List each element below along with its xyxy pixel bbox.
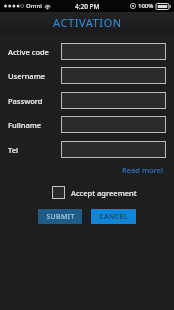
staticText: Password xyxy=(8,96,43,106)
button[interactable] xyxy=(61,43,166,60)
button[interactable] xyxy=(61,92,166,109)
staticText: 100% xyxy=(138,2,154,10)
staticText: Read more! xyxy=(122,165,163,175)
staticText: Fullname xyxy=(8,120,42,130)
staticText: Tel xyxy=(8,145,19,155)
button[interactable] xyxy=(61,141,166,158)
staticText: CANCEL xyxy=(99,212,128,222)
staticText: ACTIVATION xyxy=(53,15,122,30)
staticText: Username xyxy=(8,71,46,81)
button[interactable]: SUBMIT xyxy=(38,209,82,224)
staticText: Accept agreement xyxy=(71,188,137,198)
button[interactable] xyxy=(61,116,166,133)
button[interactable] xyxy=(61,67,166,84)
button[interactable]: CANCEL xyxy=(91,209,136,224)
button[interactable]: Read more! xyxy=(120,163,165,177)
button[interactable]: Accept agreement xyxy=(52,186,137,199)
staticText: Omni xyxy=(26,2,42,10)
staticText: SUBMIT xyxy=(46,212,75,222)
staticText: Active code xyxy=(8,47,49,57)
staticText: 4:20 PM xyxy=(75,2,100,11)
